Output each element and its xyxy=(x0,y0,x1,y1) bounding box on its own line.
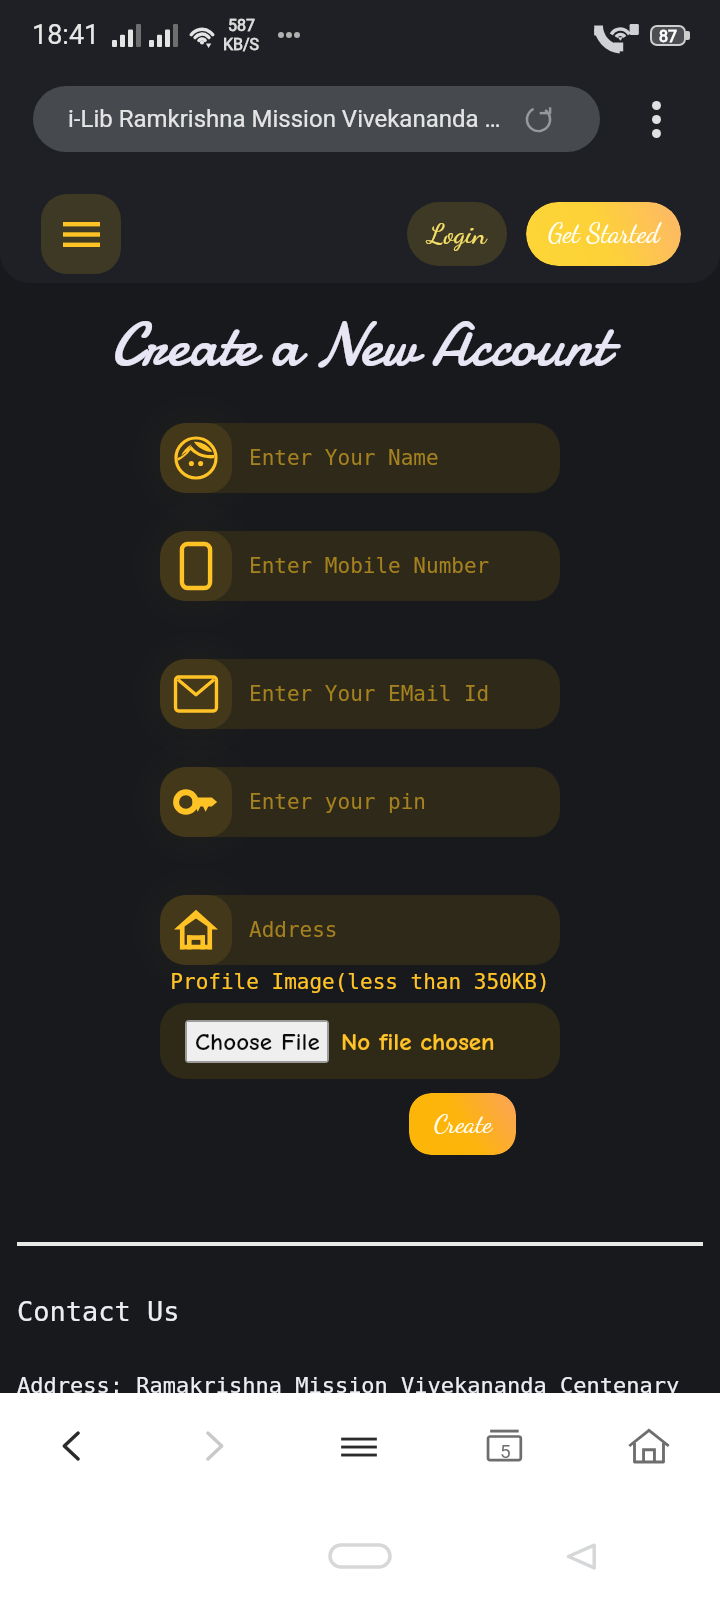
button[interactable]: Address xyxy=(160,895,560,965)
button[interactable]: Enter Mobile Number xyxy=(160,531,560,601)
button[interactable]: Enter your pin xyxy=(160,767,560,837)
button[interactable]: Choose File xyxy=(160,1003,560,1079)
staticText: 18:41 xyxy=(32,19,100,51)
button[interactable]: Home xyxy=(330,1545,390,1567)
button[interactable]: Menu xyxy=(303,1393,415,1501)
button[interactable]: Get Started xyxy=(526,202,681,266)
staticText: 5 xyxy=(500,1440,511,1462)
staticText: 587 xyxy=(228,16,255,35)
staticText: KB/S xyxy=(223,35,260,54)
staticText: Choose File xyxy=(195,1027,320,1056)
staticText: Enter Mobile Number xyxy=(249,554,490,578)
staticText: Create xyxy=(434,1108,492,1139)
button[interactable]: Back xyxy=(15,1393,127,1501)
button[interactable]: Home xyxy=(593,1393,705,1501)
button[interactable]: Enter Your EMail Id xyxy=(160,659,560,729)
staticText: Enter Your EMail Id xyxy=(249,682,490,706)
button[interactable]: Forward xyxy=(159,1393,271,1501)
staticText: Enter Your Name xyxy=(249,446,439,470)
button[interactable]: Back xyxy=(566,1543,596,1570)
button[interactable]: i-Lib Ramkrishna Mission Vivekananda … xyxy=(33,86,600,152)
button[interactable]: Open navigation menu xyxy=(41,194,121,274)
staticText: Contact Us xyxy=(17,1296,180,1327)
button[interactable]: Tabs xyxy=(448,1393,560,1501)
staticText: Address: Ramakrishna Mission Vivekananda… xyxy=(17,1373,720,1399)
staticText: i-Lib Ramkrishna Mission Vivekananda … xyxy=(68,105,524,133)
staticText: Profile Image(less than 350KB) xyxy=(0,970,720,994)
button[interactable]: Enter Your Name xyxy=(160,423,560,493)
button[interactable]: More options xyxy=(618,86,694,152)
other: Reload page xyxy=(524,105,553,134)
button[interactable]: Login xyxy=(407,202,507,266)
button[interactable]: Create xyxy=(409,1093,516,1155)
staticText: Enter your pin xyxy=(249,790,427,814)
staticText: 87 xyxy=(659,27,677,44)
staticText: Login xyxy=(428,216,487,251)
staticText: No file chosen xyxy=(341,1027,495,1056)
staticText: Address xyxy=(249,918,338,942)
staticText: Create a New Account xyxy=(0,302,720,387)
staticText: Get Started xyxy=(548,217,660,249)
